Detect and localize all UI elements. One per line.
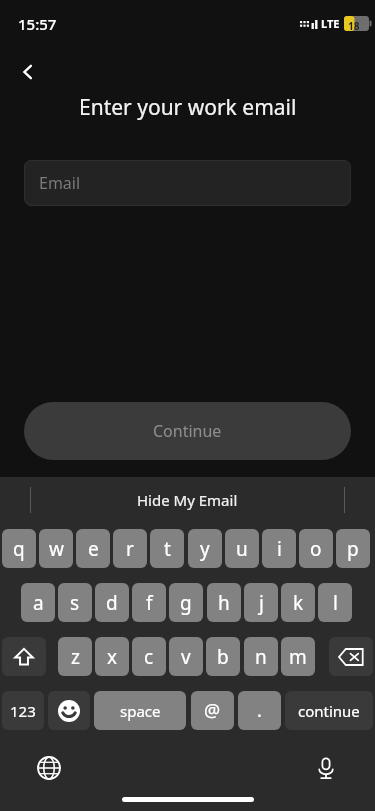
button[interactable]: q bbox=[2, 529, 36, 568]
staticText: n bbox=[255, 644, 267, 670]
button[interactable]: i bbox=[262, 529, 296, 568]
button[interactable]: d bbox=[95, 583, 129, 622]
button[interactable]: n bbox=[244, 637, 278, 676]
button[interactable]: Emoji bbox=[48, 691, 90, 730]
button[interactable]: Change language bbox=[28, 747, 70, 789]
staticText: space bbox=[120, 701, 161, 721]
staticText: 15:57 bbox=[18, 14, 57, 34]
staticText: r bbox=[126, 536, 134, 562]
staticText: b bbox=[217, 644, 229, 670]
button[interactable]: continue bbox=[285, 691, 373, 730]
button[interactable]: @ bbox=[191, 691, 234, 730]
staticText: Continue bbox=[153, 420, 222, 442]
button[interactable]: Email bbox=[24, 160, 351, 206]
button[interactable]: j bbox=[244, 583, 278, 622]
button[interactable]: h bbox=[207, 583, 241, 622]
button[interactable]: Back bbox=[10, 54, 46, 90]
staticText: h bbox=[218, 590, 230, 616]
staticText: a bbox=[33, 590, 44, 616]
button[interactable]: t bbox=[150, 529, 184, 568]
button[interactable]: Backspace bbox=[329, 637, 373, 676]
button[interactable]: o bbox=[299, 529, 333, 568]
button[interactable]: a bbox=[21, 583, 55, 622]
staticText: f bbox=[146, 590, 153, 616]
staticText: Email bbox=[39, 172, 81, 194]
button[interactable]: . bbox=[238, 691, 281, 730]
button[interactable]: c bbox=[132, 637, 166, 676]
staticText: @ bbox=[204, 698, 221, 723]
staticText: e bbox=[88, 536, 99, 562]
staticText: x bbox=[107, 644, 118, 670]
staticText: j bbox=[259, 590, 264, 616]
button[interactable]: Continue bbox=[24, 402, 351, 460]
button[interactable]: Hide My Email bbox=[137, 490, 238, 510]
staticText: 123 bbox=[10, 701, 36, 721]
button[interactable]: f bbox=[132, 583, 166, 622]
staticText: s bbox=[70, 590, 80, 616]
button[interactable]: v bbox=[169, 637, 203, 676]
staticText: z bbox=[71, 644, 80, 670]
button[interactable]: y bbox=[188, 529, 222, 568]
staticText: 18 bbox=[348, 19, 360, 33]
button[interactable]: z bbox=[58, 637, 92, 676]
button[interactable]: r bbox=[113, 529, 147, 568]
staticText: l bbox=[333, 590, 338, 616]
button[interactable]: space bbox=[94, 691, 186, 730]
staticText: . bbox=[257, 698, 262, 723]
button[interactable]: g bbox=[169, 583, 203, 622]
button[interactable]: Shift bbox=[2, 637, 46, 676]
staticText: o bbox=[310, 536, 322, 562]
staticText: d bbox=[106, 590, 118, 616]
button[interactable]: u bbox=[225, 529, 259, 568]
button[interactable]: Voice input bbox=[305, 747, 347, 789]
button[interactable]: 123 bbox=[2, 691, 44, 730]
staticText: v bbox=[181, 644, 191, 670]
staticText: c bbox=[144, 644, 154, 670]
button[interactable]: x bbox=[95, 637, 129, 676]
button[interactable]: w bbox=[39, 529, 73, 568]
button[interactable]: b bbox=[206, 637, 240, 676]
staticText: i bbox=[277, 536, 282, 562]
button[interactable]: e bbox=[76, 529, 110, 568]
staticText: continue bbox=[298, 701, 360, 721]
staticText: q bbox=[13, 536, 25, 562]
staticText: p bbox=[347, 536, 359, 562]
button[interactable]: p bbox=[336, 529, 370, 568]
staticText: t bbox=[164, 536, 171, 562]
staticText: y bbox=[200, 536, 210, 562]
staticText: LTE bbox=[321, 16, 340, 31]
button[interactable]: m bbox=[281, 637, 315, 676]
button[interactable]: s bbox=[58, 583, 92, 622]
staticText: k bbox=[293, 590, 304, 616]
staticText: m bbox=[289, 644, 307, 670]
staticText: Enter your work email bbox=[79, 93, 297, 122]
button[interactable]: l bbox=[318, 583, 352, 622]
staticText: g bbox=[180, 590, 192, 616]
staticText: u bbox=[236, 536, 248, 562]
staticText: w bbox=[49, 536, 64, 562]
button[interactable]: k bbox=[281, 583, 315, 622]
